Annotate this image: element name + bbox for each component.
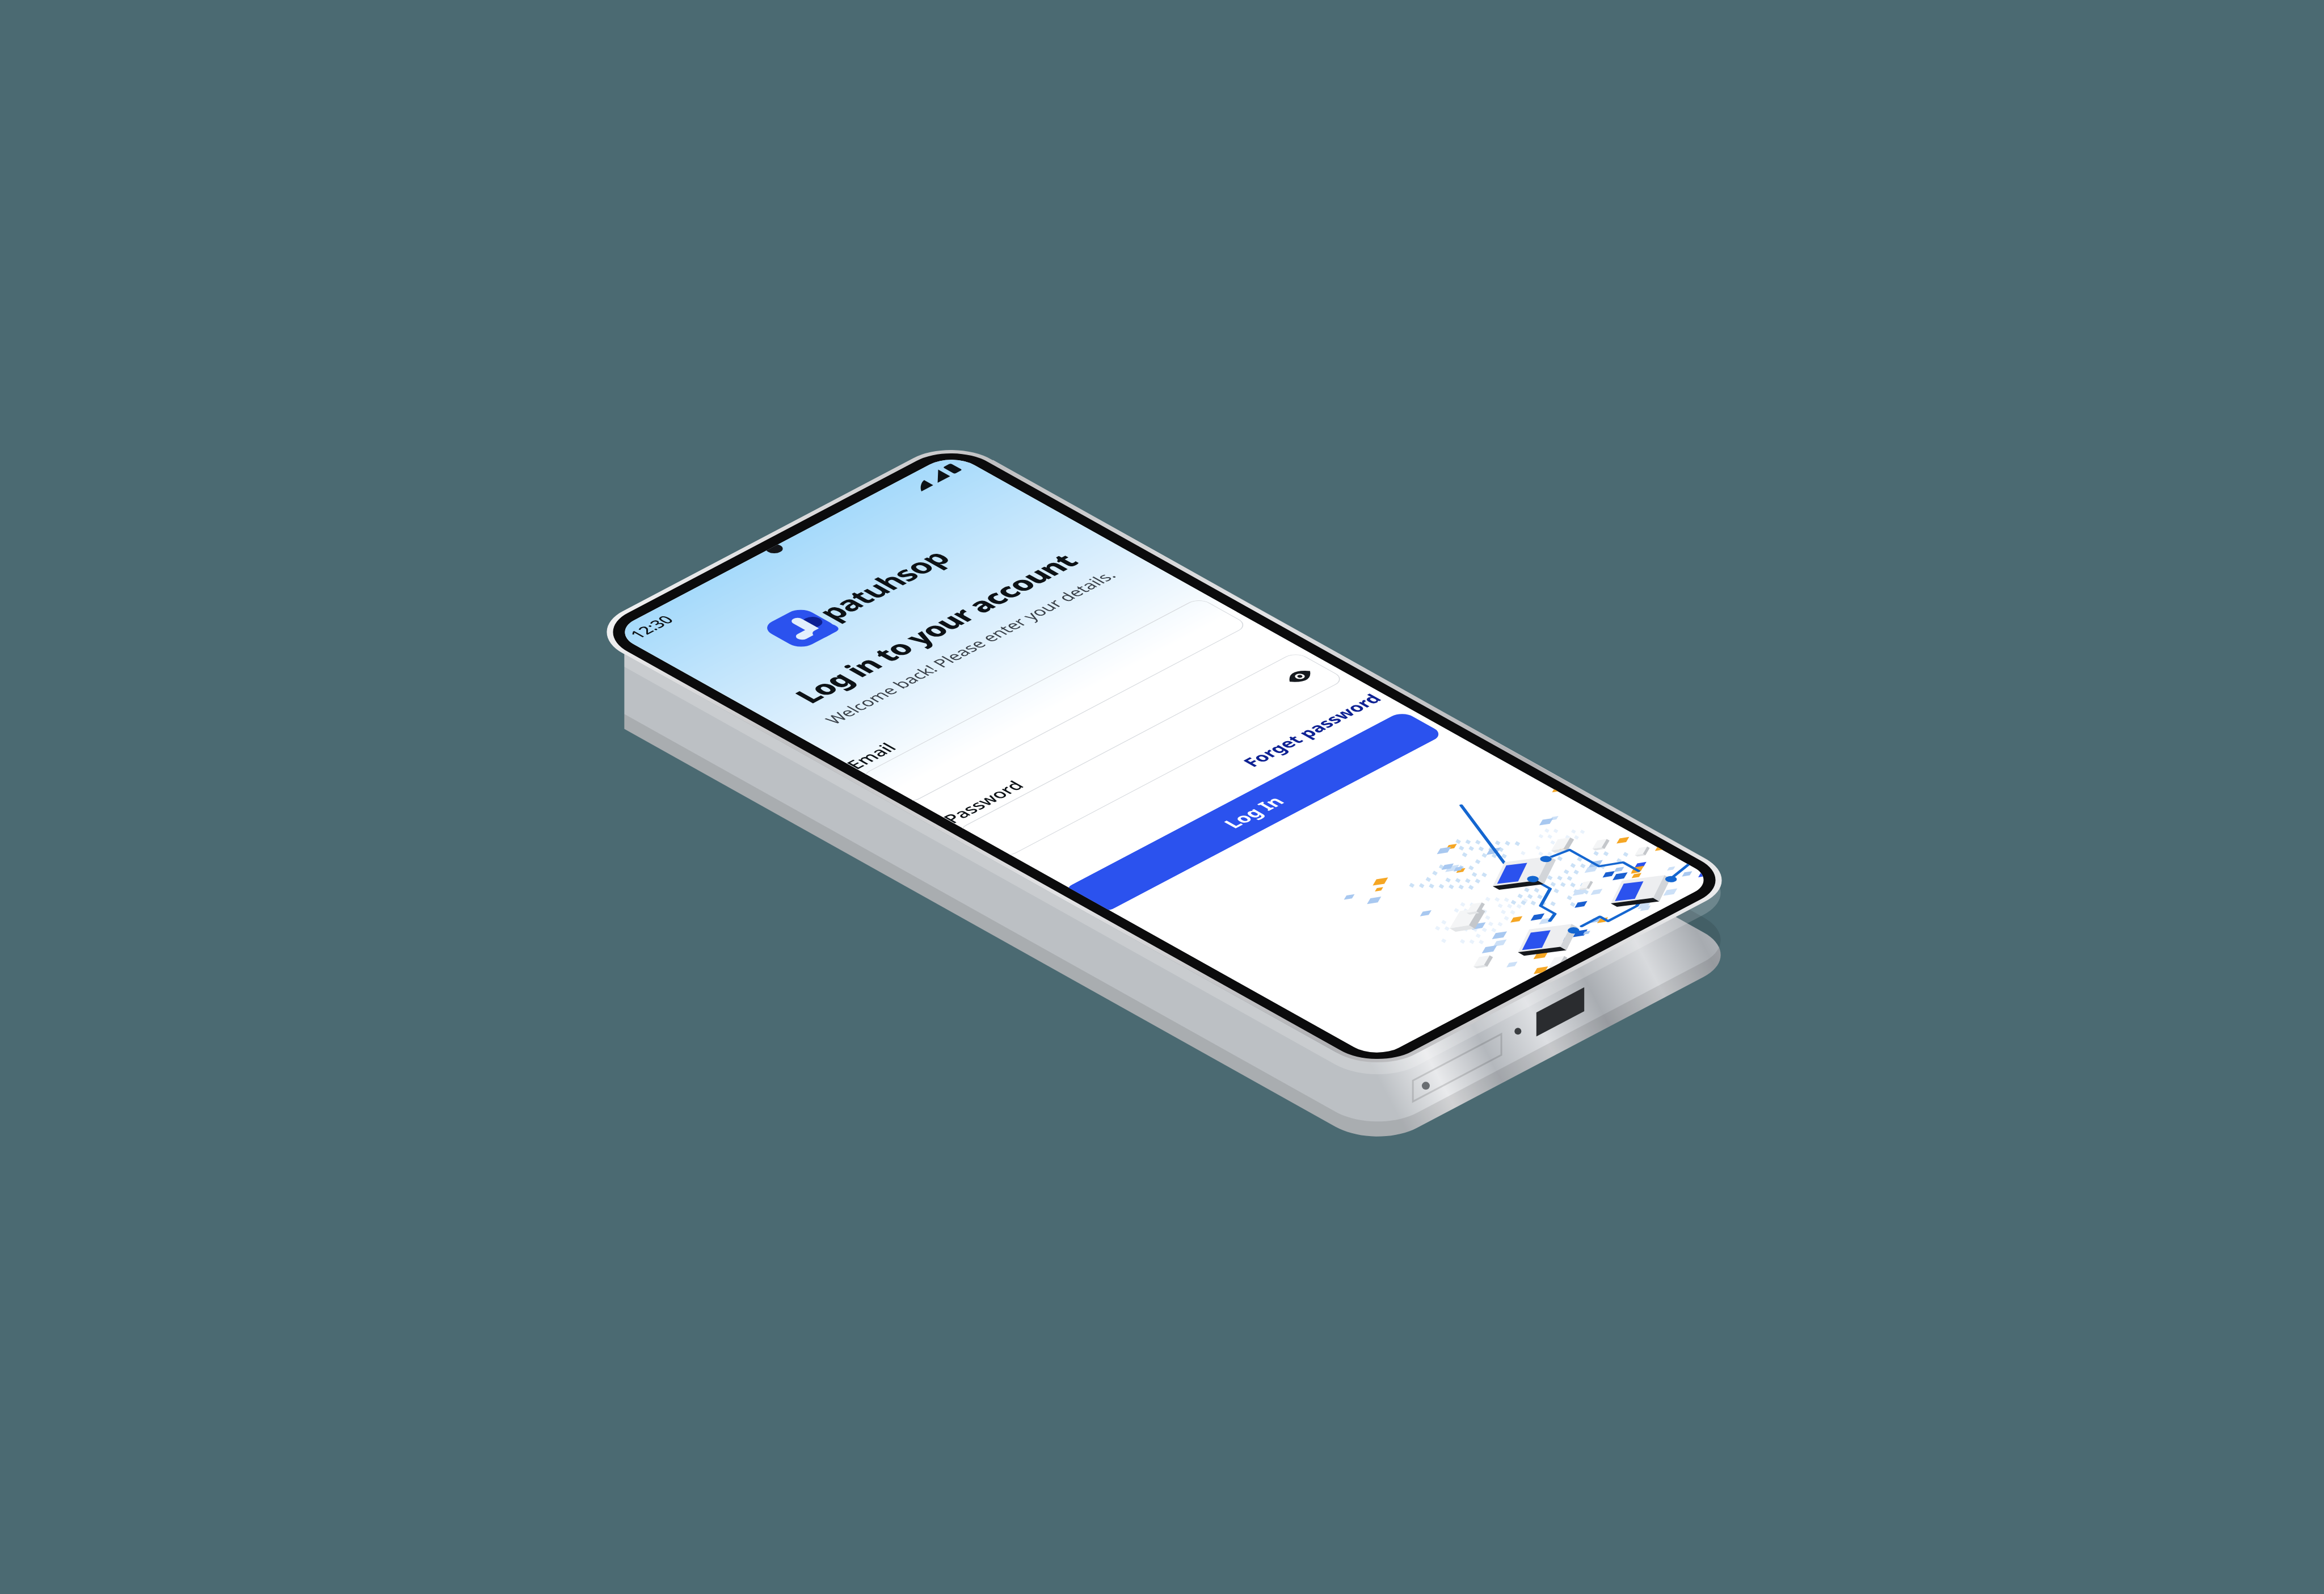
- button[interactable]: Show password: [961, 651, 1346, 856]
- staticText: Log In: [1217, 792, 1290, 832]
- staticText: 12:30: [624, 612, 679, 642]
- staticText: Log in to your account: [785, 548, 1087, 708]
- button[interactable]: Show password: [1279, 665, 1321, 688]
- staticText: Password: [937, 777, 1029, 826]
- staticText: patuhsop: [807, 544, 960, 626]
- staticText: Email: [841, 739, 902, 772]
- staticText: Welcome back! Please enter your details.: [819, 568, 1121, 727]
- button[interactable]: [864, 597, 1250, 802]
- button[interactable]: Log In: [1067, 711, 1445, 911]
- button[interactable]: Forget password: [1236, 690, 1387, 770]
